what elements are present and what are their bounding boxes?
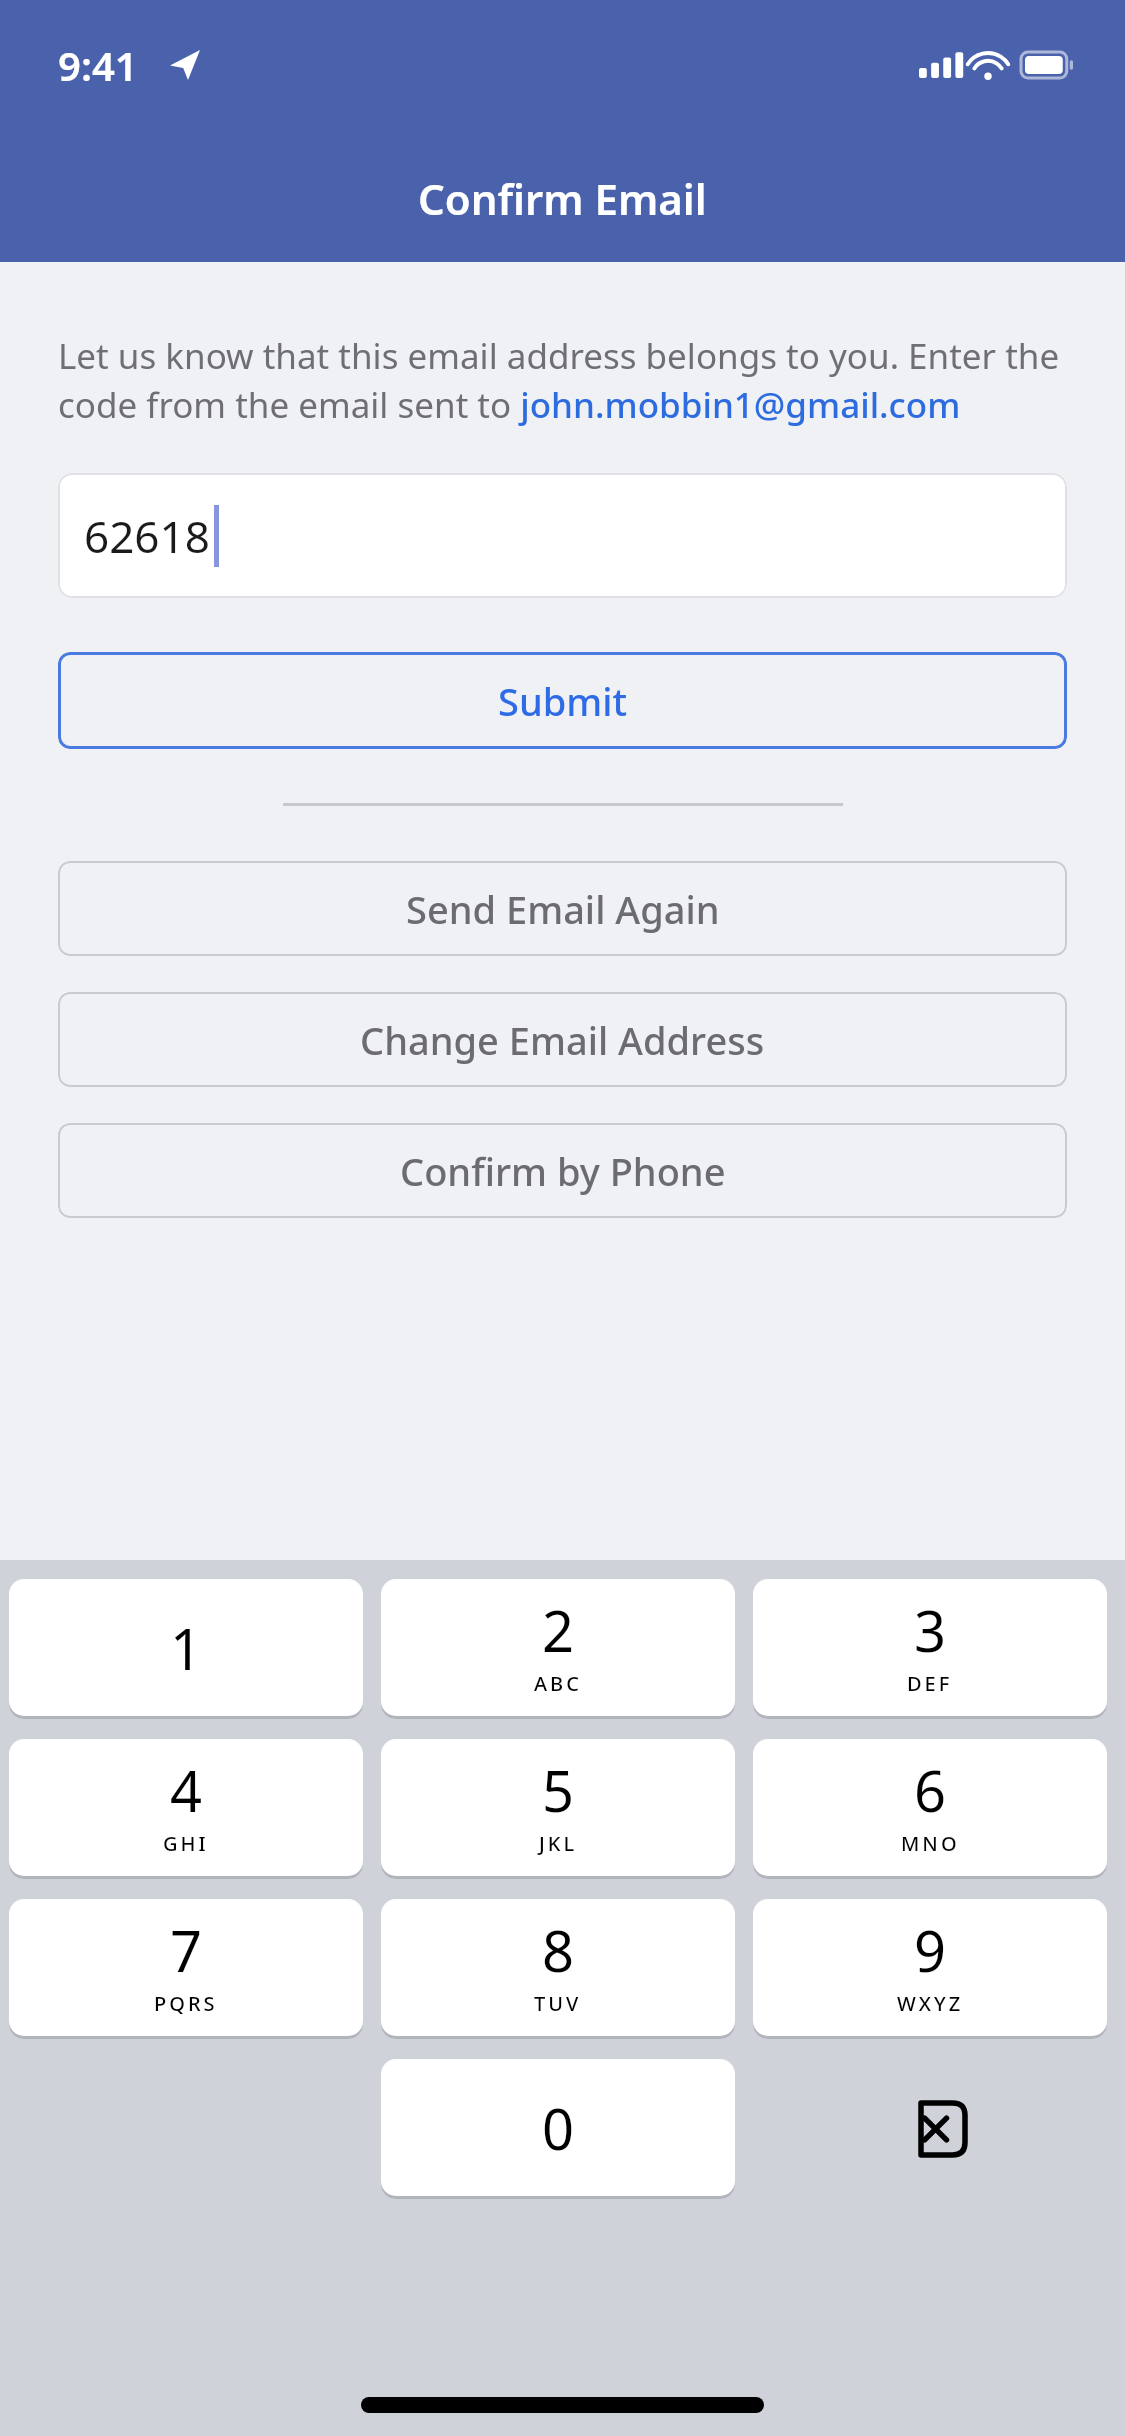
- button[interactable]: 7: [9, 1899, 363, 2036]
- button[interactable]: 0: [381, 2059, 735, 2196]
- staticText: TUV: [534, 1990, 582, 2017]
- staticText: Submit: [498, 675, 628, 727]
- staticText: Confirm by Phone: [400, 1145, 726, 1197]
- staticText: WXYZ: [897, 1990, 964, 2017]
- staticText: 9: [914, 1912, 947, 1988]
- button[interactable]: 8: [381, 1899, 735, 2036]
- button[interactable]: Submit: [58, 652, 1067, 749]
- staticText: Change Email Address: [360, 1014, 765, 1066]
- button[interactable]: Delete: [753, 2059, 1107, 2199]
- staticText: GHI: [163, 1830, 209, 1857]
- staticText: 3: [914, 1592, 947, 1668]
- button[interactable]: Change Email Address: [58, 992, 1067, 1087]
- staticText: Confirm Email: [418, 170, 707, 227]
- button[interactable]: 3: [753, 1579, 1107, 1716]
- staticText: Let us know that this email address belo…: [58, 332, 1067, 429]
- staticText: PQRS: [154, 1990, 218, 2017]
- staticText: 4: [170, 1752, 203, 1828]
- staticText: 9:41: [58, 38, 138, 92]
- staticText: 2: [542, 1592, 575, 1668]
- staticText: 8: [542, 1912, 575, 1988]
- staticText: 0: [542, 2090, 575, 2166]
- staticText: 5: [542, 1752, 575, 1828]
- button[interactable]: Send Email Again: [58, 861, 1067, 956]
- button[interactable]: 5: [381, 1739, 735, 1876]
- staticText: DEF: [907, 1670, 953, 1697]
- staticText: 62618: [84, 506, 210, 566]
- staticText: MNO: [901, 1830, 960, 1857]
- button[interactable]: 1: [9, 1579, 363, 1716]
- button[interactable]: Confirm by Phone: [58, 1123, 1067, 1218]
- staticText: 6: [914, 1752, 947, 1828]
- button[interactable]: 6: [753, 1739, 1107, 1876]
- staticText: JKL: [539, 1830, 578, 1857]
- button[interactable]: 4: [9, 1739, 363, 1876]
- button[interactable]: 2: [381, 1579, 735, 1716]
- staticText: 7: [170, 1912, 203, 1988]
- button[interactable]: 9: [753, 1899, 1107, 2036]
- staticText: Send Email Again: [406, 883, 720, 935]
- staticText: ABC: [534, 1670, 582, 1697]
- staticText: 1: [170, 1610, 203, 1686]
- button[interactable]: 62618: [58, 473, 1067, 598]
